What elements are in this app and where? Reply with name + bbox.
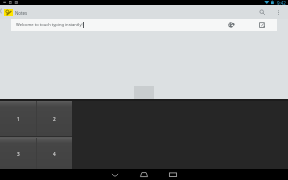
button[interactable]: Add attachment [255, 19, 269, 31]
button[interactable]: Recent apps [161, 169, 185, 180]
button[interactable]: 2 [37, 101, 72, 136]
staticText: 2 [53, 116, 56, 122]
button[interactable]: Notes [0, 5, 31, 19]
staticText: Welcome to touch typing instantly! [16, 22, 83, 28]
button[interactable]: 3 [0, 138, 36, 169]
button[interactable]: Search [253, 5, 271, 19]
button[interactable]: More options [271, 5, 285, 19]
staticText: Notes [15, 10, 28, 16]
button[interactable]: 1 [0, 101, 36, 136]
staticText: 3 [17, 151, 20, 157]
staticText: 9:42 [277, 0, 286, 5]
button[interactable]: Home [132, 169, 156, 180]
staticText: 4 [53, 151, 56, 157]
button[interactable]: Back [103, 169, 127, 180]
button[interactable]: Note colour [224, 19, 238, 31]
staticText: 1 [17, 116, 20, 122]
button[interactable]: 4 [37, 138, 72, 169]
